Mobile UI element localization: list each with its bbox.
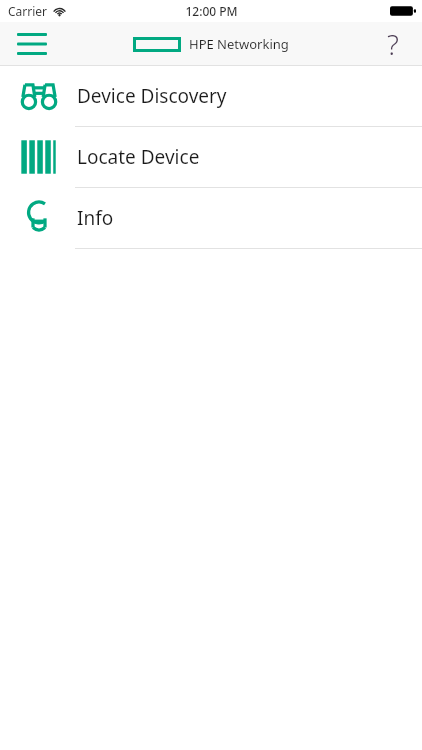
button[interactable]: Help	[370, 22, 416, 65]
staticText: Info	[77, 205, 114, 231]
button[interactable]: Locate Device	[0, 127, 422, 187]
staticText: 12:00 PM	[185, 3, 238, 19]
button[interactable]: Menu	[8, 22, 56, 65]
staticText: Device Discovery	[77, 83, 227, 109]
staticText: Locate Device	[77, 144, 200, 170]
button[interactable]: Info	[0, 188, 422, 248]
button[interactable]: Device Discovery	[0, 66, 422, 126]
staticText: HPE Networking	[189, 35, 289, 53]
staticText: ?	[387, 25, 399, 63]
staticText: Carrier	[8, 3, 48, 19]
